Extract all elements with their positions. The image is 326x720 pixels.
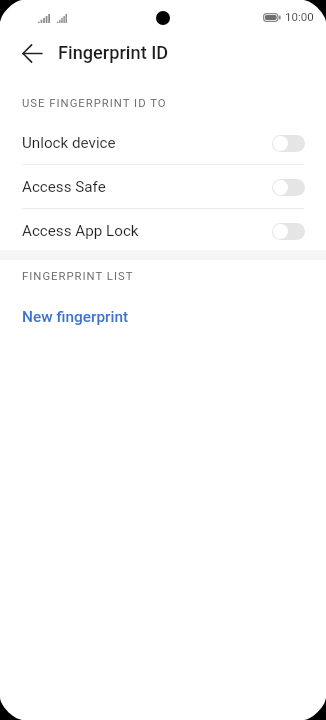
staticText: New fingerprint [22,308,129,326]
button[interactable]: Access App Lock [0,209,326,253]
staticText: Unlock device [22,134,116,152]
staticText: Access App Lock [22,222,139,240]
staticText: 10:00 [285,10,314,23]
button[interactable]: New fingerprint [0,300,326,333]
button[interactable]: Unlock device [0,121,326,165]
staticText: USE FINGERPRINT ID TO [22,97,167,110]
button[interactable]: Access Safe [0,165,326,209]
staticText: Access Safe [22,178,106,196]
staticText: FINGERPRINT LIST [22,270,134,283]
staticText: Fingerprint ID [58,42,169,63]
button[interactable]: Back [15,36,50,71]
